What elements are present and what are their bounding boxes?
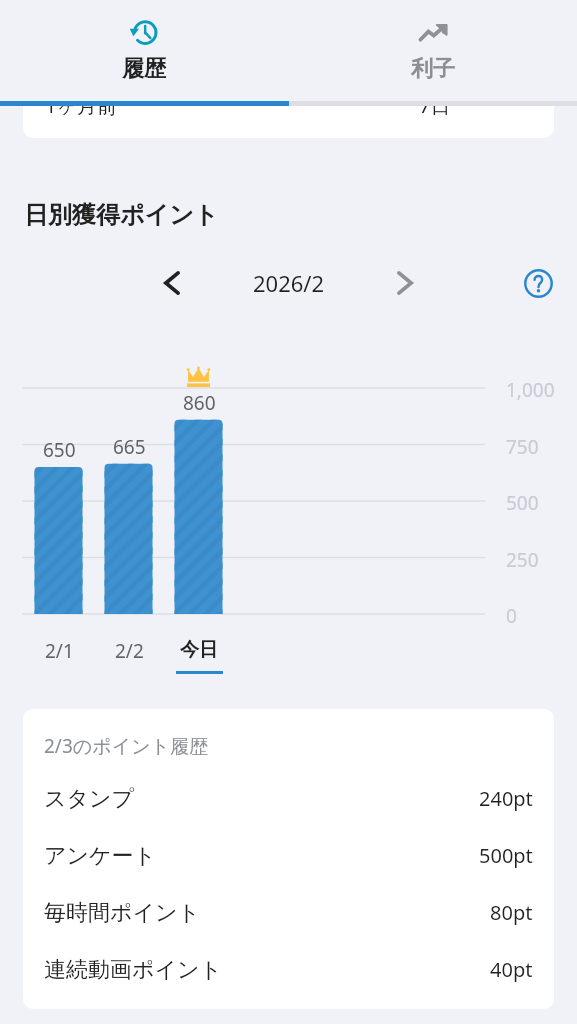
staticText: 750 (506, 434, 539, 460)
button[interactable]: 今日 (164, 638, 234, 674)
staticText: 860 (183, 390, 216, 416)
staticText: 2/2 (115, 638, 144, 664)
staticText: 2/3のポイント履歴 (44, 733, 209, 759)
button[interactable]: スタンプ (44, 770, 533, 827)
staticText: 履歴 (122, 55, 166, 83)
staticText: 650 (43, 437, 76, 463)
staticText: 250 (506, 547, 539, 573)
button[interactable]: 2/1 (24, 638, 94, 673)
staticText: 240pt (479, 785, 533, 812)
staticText: 0 (506, 603, 517, 629)
staticText: 1ヶ月前 (45, 92, 117, 119)
staticText: スタンプ (44, 785, 135, 813)
button[interactable]: 2/2 (94, 638, 164, 673)
staticText: 7日 (419, 92, 451, 119)
staticText: 500 (506, 490, 539, 516)
button[interactable]: Help (516, 261, 560, 305)
staticText: 2/1 (45, 638, 74, 664)
staticText: 日別獲得ポイント (24, 200, 219, 230)
staticText: 利子 (411, 55, 455, 83)
staticText: 500pt (479, 842, 533, 869)
button[interactable]: 利子 (288, 0, 577, 101)
button[interactable]: Previous month (148, 259, 196, 307)
staticText: 1,000 (506, 377, 555, 403)
button[interactable]: アンケート (44, 827, 533, 884)
staticText: 連続動画ポイント (44, 956, 223, 984)
staticText: 毎時間ポイント (44, 899, 201, 927)
staticText: アンケート (44, 842, 157, 870)
staticText: 40pt (490, 956, 533, 983)
button[interactable]: 連続動画ポイント (44, 941, 533, 998)
button[interactable]: Next month (381, 259, 429, 307)
staticText: 665 (113, 434, 146, 460)
button[interactable]: 毎時間ポイント (44, 884, 533, 941)
staticText: 80pt (490, 899, 533, 926)
staticText: 今日 (180, 638, 218, 662)
button[interactable]: 履歴 (0, 0, 288, 101)
staticText: 2026/2 (253, 268, 325, 298)
